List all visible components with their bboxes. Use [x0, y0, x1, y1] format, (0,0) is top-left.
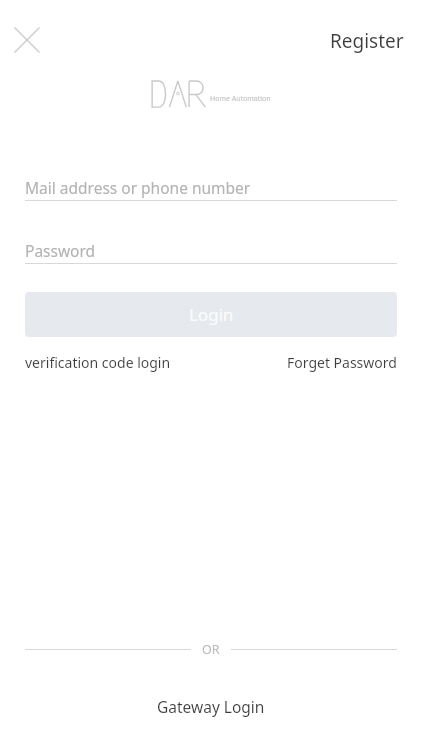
- staticText: Register: [330, 28, 404, 54]
- button[interactable]: Close: [9, 22, 45, 58]
- button[interactable]: Mail address or phone number: [25, 176, 397, 201]
- staticText: Password: [25, 240, 96, 261]
- staticText: Mail address or phone number: [25, 177, 251, 198]
- staticText: Forget Password: [287, 353, 397, 372]
- staticText: verification code login: [25, 353, 171, 372]
- button[interactable]: Register: [326, 24, 408, 58]
- button[interactable]: Password: [25, 239, 397, 264]
- staticText: Home Automation: [210, 94, 271, 104]
- staticText: Login: [189, 303, 234, 326]
- staticText: Gateway Login: [157, 696, 265, 717]
- button[interactable]: Gateway Login: [141, 690, 281, 723]
- button[interactable]: verification code login: [25, 350, 171, 375]
- staticText: OR: [202, 641, 220, 658]
- button[interactable]: Forget Password: [287, 350, 397, 375]
